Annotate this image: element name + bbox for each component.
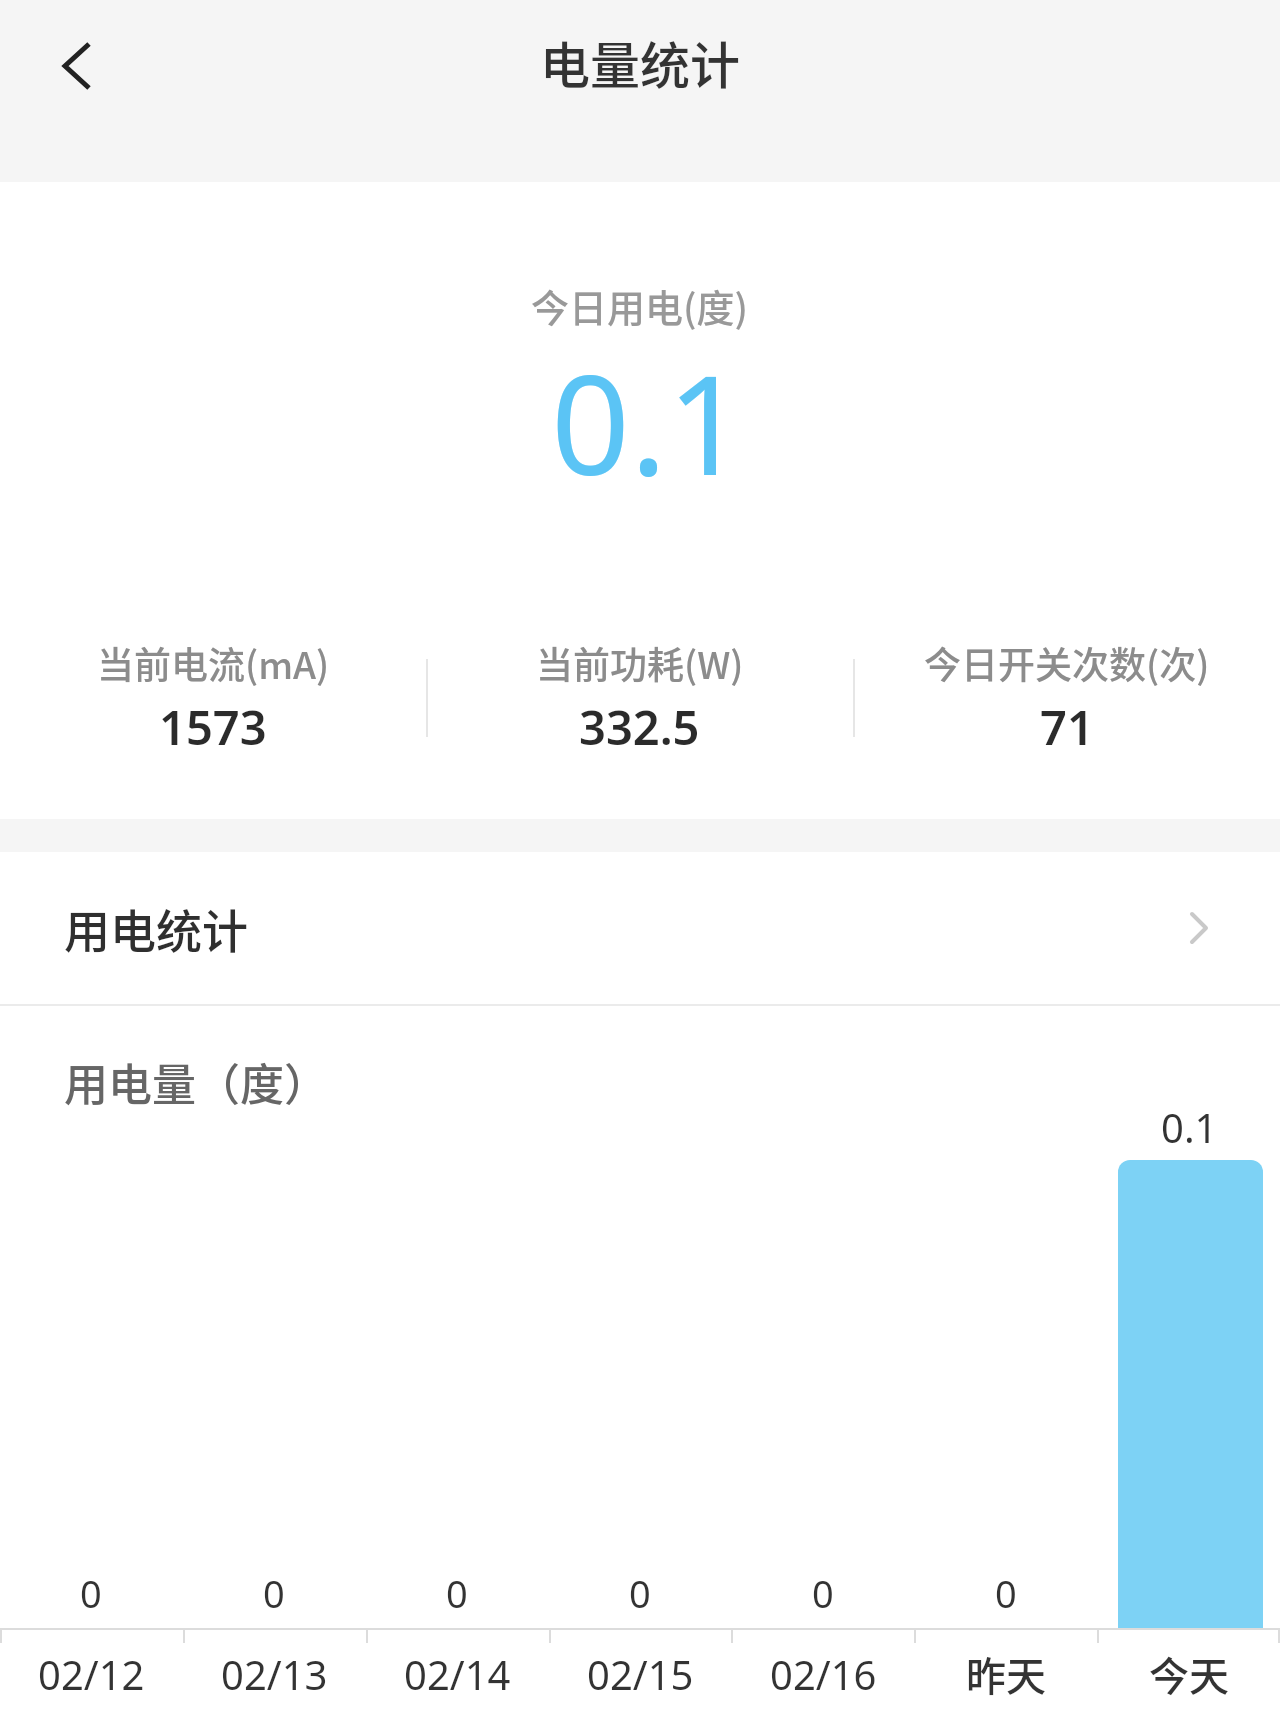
- staticText: 02/16: [770, 1647, 877, 1701]
- staticText: 昨天: [966, 1645, 1046, 1703]
- button[interactable]: 用电统计: [0, 852, 1280, 1004]
- staticText: 今日用电(度): [531, 278, 749, 333]
- staticText: 0: [629, 1567, 651, 1619]
- button[interactable]: [40, 30, 112, 102]
- staticText: 0: [812, 1567, 834, 1619]
- staticText: 1573: [159, 695, 267, 759]
- staticText: 02/14: [404, 1647, 511, 1701]
- staticText: 今日开关次数(次): [924, 636, 1210, 690]
- staticText: 0: [446, 1567, 468, 1619]
- staticText: 0: [263, 1567, 285, 1619]
- staticText: 当前功耗(W): [536, 636, 744, 690]
- staticText: 今天: [1149, 1645, 1229, 1703]
- staticText: 用电统计: [64, 895, 248, 962]
- staticText: 0.1: [551, 327, 746, 515]
- staticText: 0: [80, 1567, 102, 1619]
- staticText: 0: [995, 1567, 1017, 1619]
- staticText: 71: [1040, 695, 1094, 759]
- staticText: 电量统计: [540, 26, 740, 98]
- staticText: 02/15: [587, 1647, 694, 1701]
- staticText: 02/12: [38, 1647, 145, 1701]
- staticText: 0.1: [1161, 1100, 1218, 1154]
- staticText: 当前电流(mA): [97, 636, 330, 690]
- staticText: 02/13: [221, 1647, 328, 1701]
- staticText: 用电量（度）: [64, 1050, 328, 1114]
- staticText: 332.5: [579, 695, 700, 759]
